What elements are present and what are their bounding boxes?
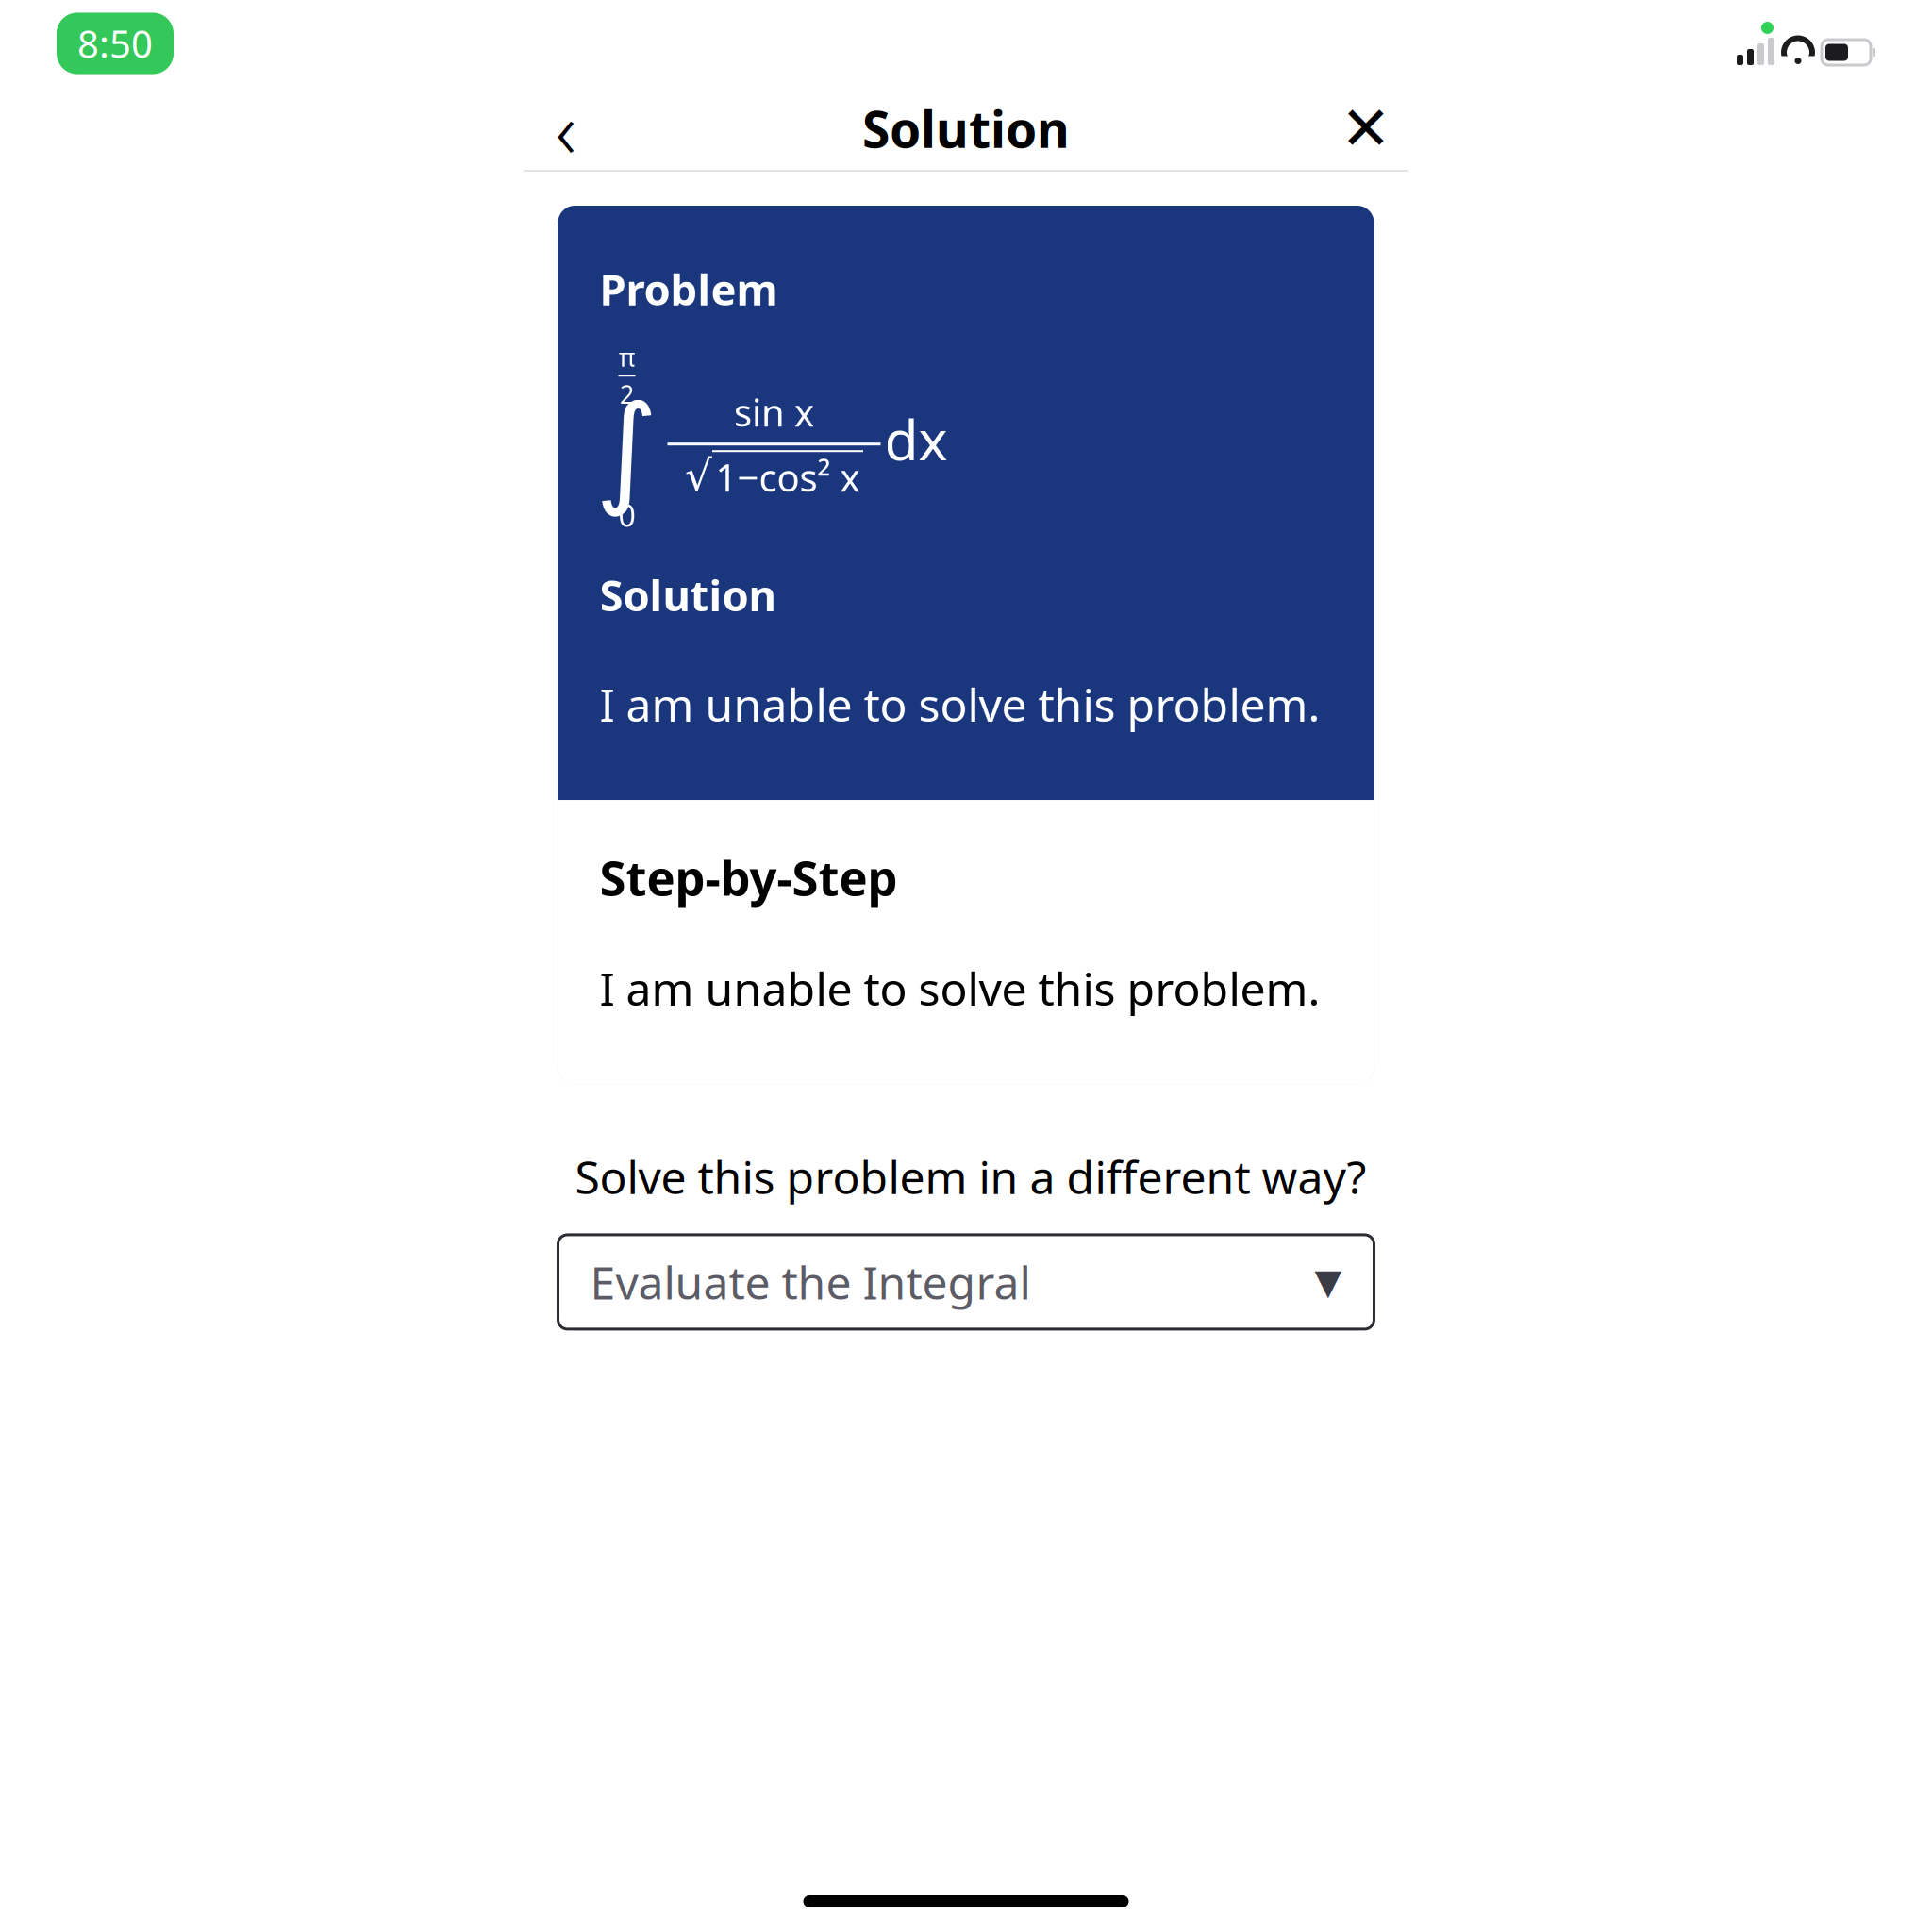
button[interactable]: Back xyxy=(528,91,604,166)
staticText: π xyxy=(619,340,635,374)
staticText: I am unable to solve this problem. xyxy=(600,958,1320,1018)
staticText: 8:50 xyxy=(77,18,153,68)
staticText: Solution xyxy=(600,566,776,623)
staticText: Step-by-Step xyxy=(600,845,898,909)
staticText: ▼ xyxy=(1315,1262,1342,1302)
button[interactable]: Evaluate the Integral xyxy=(558,1235,1374,1329)
staticText: ∫ xyxy=(595,381,658,518)
staticText: dx xyxy=(884,402,948,476)
staticText: ‹ xyxy=(556,77,576,180)
staticText: Solution xyxy=(862,95,1070,162)
staticText: Problem xyxy=(600,260,778,317)
staticText: Solve this problem in a different way? xyxy=(575,1146,1366,1206)
staticText: sin x xyxy=(734,387,814,437)
staticText: 0 xyxy=(618,495,635,535)
staticText: 2 xyxy=(620,378,634,411)
staticText: ✕ xyxy=(1341,94,1391,163)
staticText: 1−cos² x xyxy=(716,452,860,502)
staticText: √ xyxy=(685,452,712,500)
staticText: Evaluate the Integral xyxy=(590,1252,1031,1312)
staticText: I am unable to solve this problem. xyxy=(600,674,1320,734)
button[interactable]: Close xyxy=(1328,91,1404,166)
